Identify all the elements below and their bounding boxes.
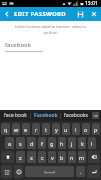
button[interactable]: Close bbox=[87, 7, 101, 21]
staticText: 13:01 bbox=[85, 0, 98, 7]
staticText: z bbox=[19, 154, 22, 161]
button[interactable]: o bbox=[82, 123, 90, 135]
button[interactable]: i bbox=[72, 123, 80, 135]
button[interactable]: facebooks bbox=[61, 110, 90, 121]
staticText: f bbox=[41, 140, 43, 147]
button[interactable]: Space bbox=[25, 166, 74, 177]
button[interactable]: e bbox=[22, 123, 30, 135]
button[interactable]: Backspace bbox=[88, 151, 100, 163]
staticText: s bbox=[19, 140, 22, 147]
staticText: e bbox=[24, 126, 28, 133]
staticText: k bbox=[81, 140, 84, 147]
button[interactable]: a bbox=[5, 137, 14, 149]
button[interactable]: n bbox=[68, 151, 76, 163]
staticText: r bbox=[35, 126, 38, 133]
staticText: g bbox=[50, 140, 54, 147]
button[interactable]: s bbox=[16, 137, 25, 149]
staticText: p bbox=[94, 126, 98, 133]
staticText: d bbox=[30, 140, 34, 147]
staticText: c bbox=[41, 154, 44, 161]
button[interactable]: y bbox=[52, 123, 60, 135]
staticText: q bbox=[4, 126, 8, 133]
staticText: a bbox=[8, 140, 12, 147]
button[interactable]: r bbox=[32, 123, 40, 135]
staticText: facebook bbox=[5, 41, 31, 49]
staticText: b bbox=[60, 154, 64, 161]
button[interactable]: Enter bbox=[87, 165, 100, 178]
staticText: o bbox=[84, 126, 88, 133]
staticText: t bbox=[45, 126, 47, 133]
button[interactable]: More suggestions bbox=[92, 112, 99, 119]
button[interactable]: facebook bbox=[5, 41, 96, 52]
button[interactable]: Shift bbox=[1, 151, 14, 163]
button[interactable]: x bbox=[27, 151, 36, 163]
button[interactable]: d bbox=[27, 137, 36, 149]
staticText: u bbox=[64, 126, 68, 133]
button[interactable]: w bbox=[12, 123, 20, 135]
staticText: j bbox=[71, 140, 73, 147]
staticText: facebooks bbox=[64, 112, 88, 119]
button[interactable]: b bbox=[58, 151, 66, 163]
button[interactable]: m bbox=[78, 151, 86, 163]
button[interactable]: q bbox=[1, 123, 10, 135]
button[interactable]: z bbox=[16, 151, 25, 163]
button[interactable]: Back bbox=[0, 7, 14, 21]
staticText: v bbox=[51, 154, 54, 161]
staticText: tabla husbna labeha bumari raborio pedri… bbox=[8, 24, 93, 36]
staticText: l bbox=[91, 140, 93, 147]
button[interactable]: u bbox=[62, 123, 70, 135]
button[interactable]: face book bbox=[0, 110, 30, 121]
staticText: Facebook bbox=[34, 112, 58, 119]
staticText: x bbox=[30, 154, 33, 161]
button[interactable]: f bbox=[38, 137, 46, 149]
button[interactable]: v bbox=[48, 151, 56, 163]
button[interactable]: Facebook bbox=[31, 110, 60, 121]
staticText: w bbox=[14, 126, 19, 133]
button[interactable]: c bbox=[38, 151, 46, 163]
staticText: face book bbox=[4, 112, 27, 119]
staticText: EDIT PASSWORD bbox=[14, 10, 73, 18]
staticText: . bbox=[80, 168, 82, 175]
staticText: h bbox=[60, 140, 64, 147]
button[interactable]: g bbox=[48, 137, 56, 149]
button[interactable]: . bbox=[76, 166, 85, 177]
button[interactable]: h bbox=[58, 137, 66, 149]
button[interactable]: p bbox=[92, 123, 100, 135]
staticText: i bbox=[75, 126, 77, 133]
button[interactable]: k bbox=[78, 137, 86, 149]
button[interactable]: Symbols bbox=[1, 165, 12, 178]
button[interactable]: Save bbox=[73, 7, 87, 21]
staticText: m bbox=[79, 154, 85, 161]
button[interactable]: t bbox=[42, 123, 50, 135]
staticText: y bbox=[55, 126, 58, 133]
button[interactable]: Emoji bbox=[14, 165, 23, 178]
button[interactable]: j bbox=[68, 137, 76, 149]
button[interactable]: l bbox=[88, 137, 96, 149]
staticText: n bbox=[70, 154, 74, 161]
